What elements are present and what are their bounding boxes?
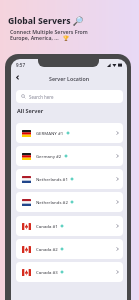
button[interactable]: Search here [16,90,123,103]
staticText: Search here [29,94,54,100]
staticText: 9:57 [16,62,25,68]
staticText: Netherlands #1 [36,176,68,182]
staticText: Canada #3 [36,269,58,275]
button[interactable]: Netherlands #1 [16,169,123,189]
staticText: Server Location [49,75,90,82]
staticText: Canada #2 [36,246,58,252]
staticText: Connect Multiple Servers From [10,28,88,35]
button[interactable]: Canada #3 [16,262,123,282]
staticText: Global Servers 🔎 [8,15,84,27]
button[interactable]: Back [11,71,23,83]
button[interactable]: GERMANY #1 [16,123,123,143]
staticText: Germany #2 [36,153,62,159]
staticText: GERMANY #1 [36,130,64,136]
staticText: Europe, America, ... 🏆 [10,34,70,41]
staticText: Netherlands #2 [36,199,68,205]
staticText: All Server [17,107,44,114]
button[interactable]: Canada #2 [16,239,123,259]
staticText: Canada #1 [36,223,58,229]
button[interactable]: Netherlands #2 [16,192,123,212]
button[interactable]: Germany #2 [16,146,123,166]
button[interactable]: Canada #1 [16,216,123,236]
